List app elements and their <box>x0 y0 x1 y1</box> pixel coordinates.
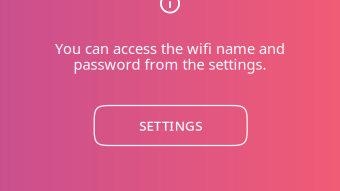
staticText: password from the settings. <box>73 54 266 74</box>
staticText: SETTINGS <box>139 117 202 134</box>
button[interactable]: SETTINGS <box>94 105 247 145</box>
staticText: You can access the wifi name and <box>55 38 285 58</box>
button[interactable]: Info <box>160 0 180 13</box>
